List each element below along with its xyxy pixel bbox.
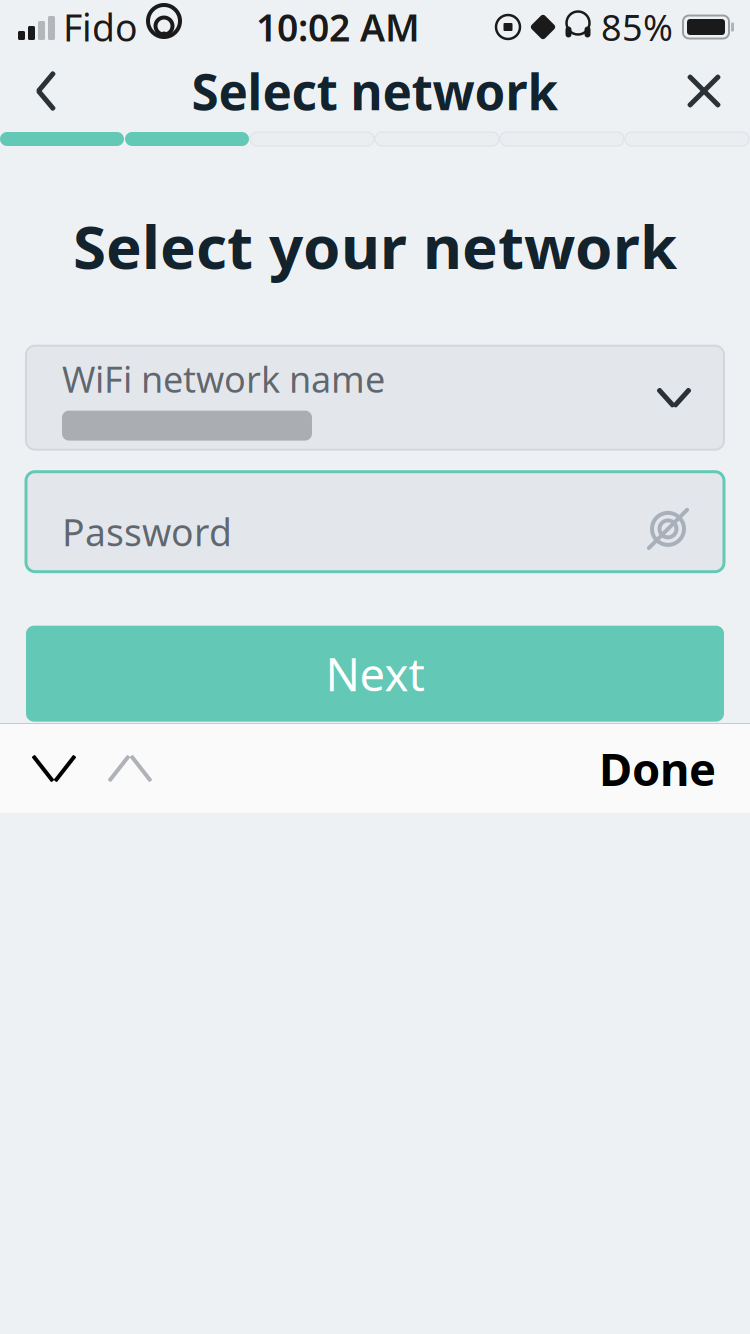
button[interactable]: Previous field xyxy=(16,724,92,813)
staticText: Select network xyxy=(191,58,558,124)
button[interactable]: Next xyxy=(26,626,724,722)
button[interactable]: Close xyxy=(664,51,744,131)
button[interactable]: Password xyxy=(26,472,724,572)
staticText: 85% xyxy=(601,3,673,51)
button[interactable]: Done xyxy=(585,724,730,813)
staticText: Fido xyxy=(63,2,138,52)
staticText: WiFi network name xyxy=(62,355,385,403)
button[interactable]: Next field xyxy=(92,724,168,813)
staticText: Select your network xyxy=(73,206,677,286)
staticText: Password xyxy=(62,507,232,556)
button[interactable]: WiFi network name xyxy=(26,346,724,450)
button[interactable]: Back xyxy=(6,51,86,131)
staticText: 10:02 AM xyxy=(256,2,420,52)
staticText: Next xyxy=(325,644,424,704)
staticText: Done xyxy=(599,738,716,799)
